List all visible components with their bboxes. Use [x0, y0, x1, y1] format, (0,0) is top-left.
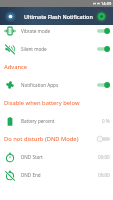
staticText: Advance [4, 63, 28, 71]
staticText: 00:00 [98, 154, 110, 160]
staticText: Notification Apps [21, 82, 59, 88]
button[interactable]: Battery percent [0, 112, 113, 130]
staticText: Ultimate Flash Notification [24, 13, 93, 20]
button[interactable]: DND End [0, 166, 113, 184]
button[interactable]: Flash power toggle [96, 11, 107, 22]
staticText: Vibrate mode [21, 28, 51, 34]
button[interactable]: Vibrate mode [0, 22, 113, 40]
staticText: 14:09 [101, 1, 112, 6]
staticText: 0 % [102, 118, 110, 124]
staticText: 00:00 [98, 172, 110, 178]
staticText: DND Start [21, 154, 43, 160]
staticText: Disable when battery below [4, 99, 80, 107]
button[interactable]: DND Start [0, 148, 113, 166]
staticText: DND End [21, 172, 41, 178]
staticText: Silent mode [21, 46, 47, 52]
staticText: Battery percent [21, 118, 55, 124]
button[interactable]: Do not disturb (DND Mode) [0, 130, 113, 148]
button[interactable]: Silent mode [0, 40, 113, 58]
staticText: Do not disturb (DND Mode) [4, 135, 79, 143]
button[interactable]: Notification Apps [0, 76, 113, 94]
